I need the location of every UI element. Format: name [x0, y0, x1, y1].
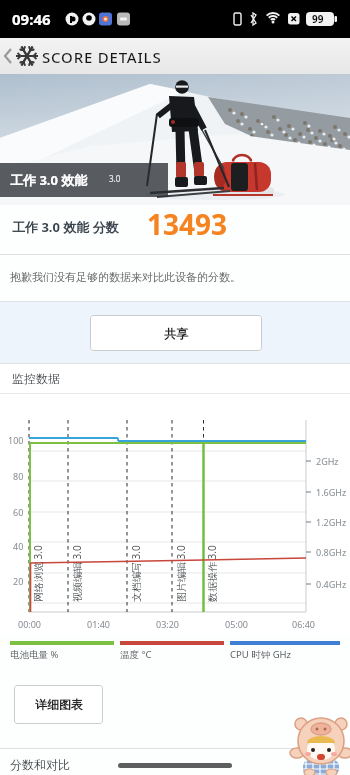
staticText: 详细图表	[35, 697, 83, 712]
staticText: 工作 3.0 效能	[10, 171, 88, 189]
button[interactable]: 详细图表	[14, 685, 103, 724]
staticText: 图片编辑 3.0	[174, 545, 186, 602]
staticText: 99	[312, 12, 324, 26]
staticText: 监控数据	[12, 371, 60, 386]
staticText: 温度 °C	[120, 648, 152, 661]
staticText: 0.8GHz	[316, 546, 347, 558]
staticText: 00:00	[18, 618, 42, 630]
staticText: 05:00	[225, 618, 249, 630]
staticText: 数据操作 3.0	[205, 545, 217, 602]
staticText: 20	[13, 575, 24, 587]
staticText: 网络浏览 3.0	[31, 545, 43, 602]
staticText: SCORE DETAILS	[42, 47, 162, 67]
button[interactable]: 分数和对比	[0, 748, 350, 775]
staticText: 0.4GHz	[316, 578, 347, 590]
staticText: 01:40	[87, 618, 111, 630]
staticText: 80	[13, 470, 24, 482]
staticText: 1.6GHz	[316, 486, 347, 498]
staticText: 分数和对比	[10, 757, 70, 772]
staticText: 2GHz	[316, 455, 339, 467]
staticText: 视频编辑 3.0	[70, 545, 82, 602]
staticText: 100	[8, 434, 24, 446]
staticText: CPU 时钟 GHz	[230, 648, 292, 661]
staticText: 共享	[164, 326, 188, 341]
staticText: 13493	[147, 205, 228, 243]
staticText: 40	[13, 540, 24, 552]
staticText: 电池电量 %	[10, 648, 59, 661]
staticText: 60	[13, 506, 24, 518]
button[interactable]: 共享	[90, 315, 262, 351]
staticText: 3.0	[109, 173, 121, 184]
staticText: 工作 3.0 效能 分数	[12, 218, 119, 236]
staticText: 03:20	[156, 618, 180, 630]
staticText: 09:46	[12, 9, 51, 29]
button[interactable]: SCORE DETAILS	[0, 38, 350, 74]
staticText: 抱歉我们没有足够的数据来对比此设备的分数。	[10, 270, 241, 284]
staticText: 1.2GHz	[316, 516, 347, 528]
staticText: 文档编写 3.0	[129, 545, 141, 602]
staticText: 06:40	[292, 618, 316, 630]
